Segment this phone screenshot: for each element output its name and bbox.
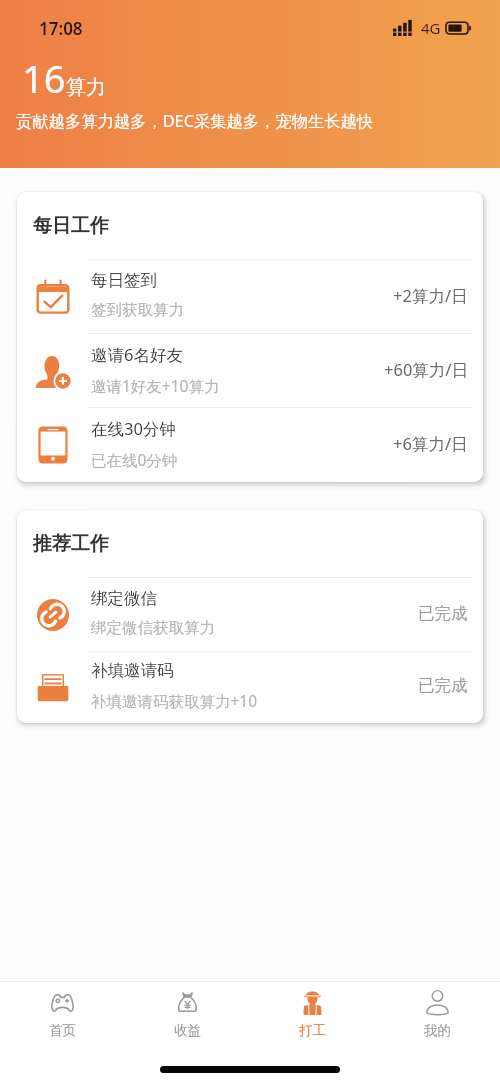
staticText: 贡献越多算力越多，DEC采集越多，宠物生长越快 — [16, 110, 374, 132]
staticText: 在线30分钟 — [91, 417, 176, 440]
staticText: 16 — [22, 52, 66, 104]
other: Work — [299, 989, 326, 1016]
staticText: 收益 — [174, 1022, 201, 1039]
staticText: 每日工作 — [33, 214, 109, 238]
staticText: 首页 — [49, 1022, 76, 1039]
button[interactable]: 邀请6名好友 — [17, 334, 483, 408]
button[interactable]: Profile — [375, 989, 500, 1039]
staticText: +6算力/日 — [393, 432, 468, 455]
staticText: 4G — [421, 18, 441, 38]
staticText: 17:08 — [39, 17, 83, 40]
button[interactable]: Earnings — [125, 989, 250, 1039]
staticText: 邀请6名好友 — [91, 343, 183, 366]
staticText: 补填邀请码获取算力+10 — [91, 690, 258, 711]
button[interactable]: 每日签到 — [17, 260, 483, 334]
staticText: 推荐工作 — [33, 532, 109, 556]
staticText: 绑定微信获取算力 — [91, 618, 215, 638]
staticText: 已在线0分钟 — [91, 449, 178, 470]
staticText: +60算力/日 — [384, 358, 468, 381]
staticText: 签到获取算力 — [91, 300, 184, 320]
staticText: 每日签到 — [91, 270, 157, 291]
button[interactable]: 补填邀请码 — [17, 652, 483, 723]
button[interactable]: 在线30分钟 — [17, 408, 483, 482]
button[interactable]: Home — [0, 989, 125, 1039]
staticText: 已完成 — [418, 675, 468, 696]
staticText: 算力 — [66, 75, 106, 100]
staticText: 打工 — [299, 1022, 326, 1039]
button[interactable]: 绑定微信 — [17, 578, 483, 652]
button[interactable]: Work — [250, 989, 375, 1039]
staticText: 补填邀请码 — [91, 660, 174, 681]
staticText: +2算力/日 — [393, 284, 468, 307]
staticText: 邀请1好友+10算力 — [91, 375, 220, 396]
other: Home — [49, 989, 76, 1016]
staticText: 我的 — [424, 1022, 451, 1039]
staticText: 绑定微信 — [91, 588, 157, 609]
other: Earnings — [174, 989, 201, 1016]
staticText: 已完成 — [418, 603, 468, 624]
other: Profile — [424, 989, 451, 1016]
